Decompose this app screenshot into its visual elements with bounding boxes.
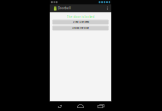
staticText: Doorbell (58, 7, 71, 10)
button[interactable]: View Live Feed (52, 20, 109, 24)
staticText: The door is locked (66, 15, 94, 18)
button[interactable]: Home (70, 101, 91, 111)
staticText: View Live Feed (72, 21, 88, 23)
button[interactable]: Back (50, 101, 70, 111)
staticText: Unlock the Door (72, 27, 89, 29)
button[interactable]: Recent apps (91, 101, 111, 111)
button[interactable]: Unlock the Door (52, 26, 109, 30)
button[interactable]: More options (105, 4, 110, 12)
